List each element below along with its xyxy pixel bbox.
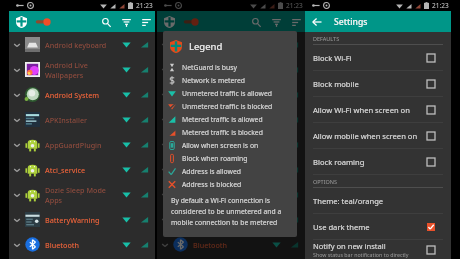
staticText: Address is allowed — [182, 167, 241, 176]
staticText: Android keyboard — [45, 40, 107, 50]
button[interactable]: AppGuardPlugin — [157, 132, 305, 157]
button[interactable]: Dozie Sleep Mode — [9, 182, 155, 207]
button[interactable]: Allow Wi-Fi when screen on — [305, 97, 451, 123]
button[interactable]: Search — [247, 13, 265, 31]
staticText: Allow when screen is on — [182, 141, 259, 150]
staticText: Dozie Sleep Mode — [193, 185, 254, 195]
staticText: DEFAULTS — [313, 35, 340, 42]
staticText: Atci_service — [193, 165, 234, 175]
staticText: Android keyboard — [193, 40, 255, 50]
button[interactable]: BatteryWarning — [157, 207, 305, 232]
button[interactable]: Theme: teal/orange — [305, 188, 451, 214]
button[interactable]: NetGuard — [13, 13, 30, 30]
button[interactable]: Search — [97, 13, 115, 31]
button[interactable]: Enable NetGuard — [183, 15, 203, 29]
staticText: Unmetered traffic is blocked — [182, 102, 273, 111]
staticText: APKInstaller — [45, 115, 88, 125]
staticText: Atci_service — [45, 165, 86, 175]
staticText: Apps — [45, 195, 63, 205]
staticText: BatteryWarning — [193, 215, 248, 225]
button[interactable]: Use dark theme — [305, 214, 451, 240]
staticText: Block when roaming — [182, 154, 248, 163]
staticText: BatteryWarning — [45, 215, 100, 225]
staticText: Android System — [193, 90, 248, 100]
staticText: Apps — [193, 195, 211, 205]
button[interactable]: APKInstaller — [157, 107, 305, 132]
button[interactable]: Android keyboard — [9, 32, 155, 57]
button[interactable]: Enable NetGuard — [35, 15, 55, 29]
staticText: AppGuardPlugin — [45, 140, 102, 150]
staticText: AppGuardPlugin — [193, 140, 250, 150]
staticText: Use dark theme — [313, 222, 370, 232]
button[interactable]: Sort — [287, 13, 305, 31]
button[interactable]: Back — [308, 13, 325, 30]
staticText: Bluetooth — [45, 240, 80, 250]
staticText: Unmetered traffic is allowed — [182, 89, 272, 98]
staticText: 21:23 — [136, 1, 153, 10]
staticText: Android Live — [45, 60, 88, 70]
button[interactable]: Android System — [9, 82, 155, 107]
button[interactable]: AppGuardPlugin — [9, 132, 155, 157]
button[interactable]: Block Wi-Fi — [305, 45, 451, 71]
staticText: Network is metered — [182, 76, 246, 85]
staticText: Show status bar notification to directly — [313, 251, 409, 258]
staticText: Wallpapers — [193, 70, 232, 80]
staticText: Legend — [189, 40, 223, 53]
button[interactable]: Atci_service — [9, 157, 155, 182]
staticText: Theme: teal/orange — [313, 196, 384, 206]
staticText: Allow Wi-Fi when screen on — [313, 105, 410, 115]
button[interactable]: Android keyboard — [157, 32, 305, 57]
staticText: Android Live — [193, 60, 236, 70]
staticText: Metered traffic is blocked — [182, 128, 263, 137]
button[interactable]: Filter — [267, 13, 285, 31]
staticText: Android System — [45, 90, 100, 100]
button[interactable]: Filter — [117, 13, 135, 31]
staticText: Notify on new install — [313, 241, 386, 251]
staticText: Block mobile — [313, 79, 359, 89]
staticText: Bluetooth — [193, 240, 228, 250]
button[interactable]: Sort — [137, 13, 155, 31]
staticText: 21:23 — [286, 1, 303, 10]
button[interactable]: Block roaming — [305, 149, 451, 175]
staticText: APKInstaller — [193, 115, 236, 125]
staticText: Wallpapers — [45, 70, 84, 80]
button[interactable]: Bluetooth — [9, 232, 155, 257]
button[interactable]: NetGuard — [161, 13, 178, 30]
staticText: Address is blocked — [182, 180, 242, 189]
button[interactable]: Bluetooth — [157, 232, 305, 257]
staticText: Block roaming — [313, 157, 365, 167]
button[interactable]: Dozie Sleep Mode — [157, 182, 305, 207]
staticText: 21:23 — [432, 1, 449, 10]
staticText: Dozie Sleep Mode — [45, 185, 106, 195]
staticText: NetGuard is busy — [182, 63, 237, 72]
button[interactable]: APKInstaller — [9, 107, 155, 132]
staticText: Settings — [334, 16, 368, 28]
button[interactable]: Atci_service — [157, 157, 305, 182]
button[interactable]: Notify on new install — [305, 240, 451, 259]
staticText: Metered traffic is allowed — [182, 115, 263, 124]
button[interactable]: Allow mobile when screen on — [305, 123, 451, 149]
button[interactable]: Block mobile — [305, 71, 451, 97]
button[interactable]: Android Live — [157, 57, 305, 82]
button[interactable]: Android Live — [9, 57, 155, 82]
staticText: Block Wi-Fi — [313, 53, 352, 63]
staticText: By default a Wi-Fi connection is conside… — [171, 196, 289, 227]
staticText: Allow mobile when screen on — [313, 131, 418, 141]
button[interactable]: BatteryWarning — [9, 207, 155, 232]
button[interactable]: Android System — [157, 82, 305, 107]
staticText: OPTIONS — [313, 178, 338, 185]
